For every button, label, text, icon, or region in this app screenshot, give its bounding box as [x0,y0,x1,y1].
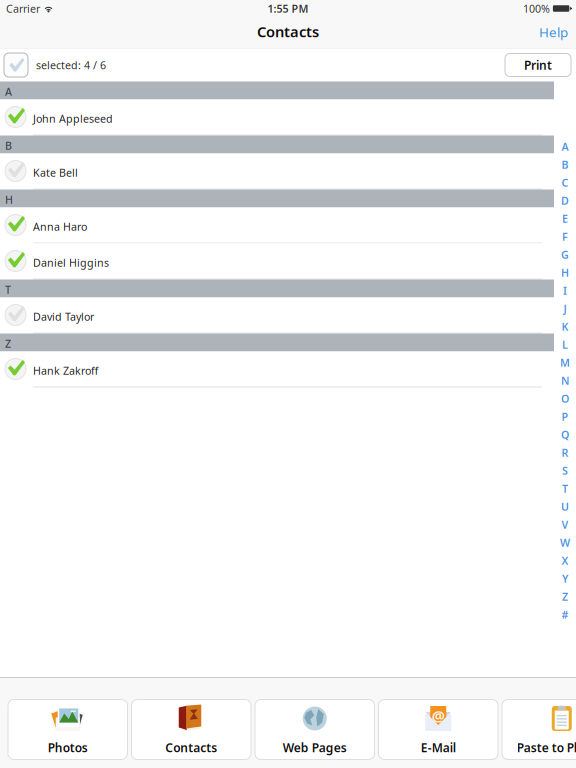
staticText: Paste to Photos [517,739,576,755]
staticText: T [5,282,11,297]
staticText: D [561,193,569,208]
staticText: S [562,463,568,478]
button[interactable]: M [554,353,576,371]
staticText: N [561,373,569,388]
staticText: Z [5,336,11,351]
staticText: V [561,517,568,532]
staticText: Kate Bell [33,165,78,180]
button[interactable]: R [554,443,576,461]
button[interactable]: B [554,155,576,173]
staticText: E-Mail [421,739,456,755]
button[interactable]: Contacts [131,699,251,759]
staticText: Contacts [165,739,217,755]
staticText: L [562,337,568,352]
staticText: J [563,301,566,316]
button[interactable]: P [554,407,576,425]
button[interactable]: Web Pages [255,699,374,759]
staticText: B [561,157,568,172]
staticText: Hank Zakroff [33,363,98,378]
button[interactable]: J [554,299,576,317]
button[interactable]: Z [554,587,576,605]
staticText: K [561,319,568,334]
staticText: W [560,535,570,550]
staticText: Q [561,427,569,442]
staticText: Anna Haro [33,219,87,234]
staticText: T [562,481,568,496]
button[interactable]: Y [554,569,576,587]
staticText: Print [524,57,552,73]
staticText: G [561,247,569,262]
staticText: Web Pages [283,739,347,755]
staticText: Contacts [257,22,319,41]
staticText: 100% [523,1,550,16]
button[interactable]: C [554,173,576,191]
button[interactable]: O [554,389,576,407]
button[interactable]: Daniel Higgins [0,243,554,279]
staticText: H [561,265,569,280]
staticText: Z [562,589,568,604]
button[interactable]: X [554,551,576,569]
staticText: John Appleseed [33,111,113,126]
staticText: 1:55 PM [267,1,308,16]
staticText: I [563,283,567,298]
button[interactable]: W [554,533,576,551]
staticText: Daniel Higgins [33,255,109,270]
button[interactable]: # [554,605,576,623]
button[interactable]: T [554,479,576,497]
button[interactable]: G [554,245,576,263]
staticText: X [561,553,568,568]
button[interactable]: U [554,497,576,515]
staticText: C [561,175,568,190]
button[interactable]: @ [378,699,498,759]
staticText: P [561,409,568,424]
staticText: Y [562,571,568,586]
staticText: F [562,229,568,244]
staticText: Help [539,23,568,41]
staticText: R [561,445,568,460]
button[interactable]: V [554,515,576,533]
button[interactable]: F [554,227,576,245]
button[interactable]: Hank Zakroff [0,351,554,387]
button[interactable]: A [554,137,576,155]
button[interactable]: Paste to Photos [502,699,576,759]
staticText: B [5,138,12,153]
staticText: A [561,139,568,154]
staticText: H [5,192,13,207]
staticText: David Taylor [33,309,94,324]
staticText: # [561,607,568,622]
staticText: selected: 4 / 6 [36,58,106,72]
button[interactable]: Q [554,425,576,443]
button[interactable]: Print [505,53,571,76]
button[interactable]: I [554,281,576,299]
staticText: @ [432,706,445,725]
button[interactable]: Select all contacts [4,53,28,77]
staticText: U [561,499,569,514]
button[interactable]: David Taylor [0,297,554,333]
staticText: M [560,355,570,370]
button[interactable]: Photos [8,699,127,759]
button[interactable]: Anna Haro [0,207,554,243]
staticText: Carrier [6,1,40,16]
staticText: O [561,391,569,406]
button[interactable]: D [554,191,576,209]
staticText: Photos [48,739,88,755]
button[interactable]: S [554,461,576,479]
staticText: E [562,211,568,226]
button[interactable]: N [554,371,576,389]
button[interactable]: H [554,263,576,281]
button[interactable]: L [554,335,576,353]
button[interactable]: K [554,317,576,335]
button[interactable]: Help [531,21,576,47]
button[interactable]: Kate Bell [0,153,554,189]
button[interactable]: John Appleseed [0,99,554,135]
staticText: A [5,84,12,99]
button[interactable]: E [554,209,576,227]
